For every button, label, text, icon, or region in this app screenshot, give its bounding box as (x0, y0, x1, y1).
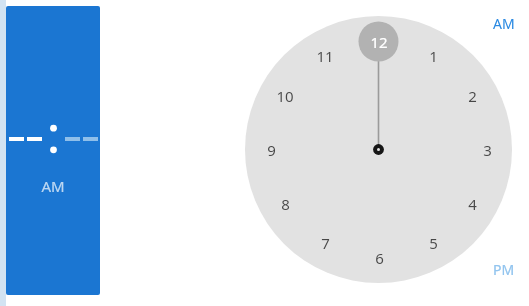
staticText: 6 (375, 248, 384, 268)
staticText: AM (493, 14, 515, 33)
button[interactable]: AM (486, 12, 522, 34)
staticText: 3 (483, 140, 492, 160)
button[interactable]: 5 (417, 231, 449, 255)
staticText: 7 (321, 233, 330, 253)
staticText: 5 (429, 233, 438, 253)
staticText: 11 (316, 46, 334, 66)
button[interactable]: 3 (471, 138, 503, 162)
staticText: 10 (276, 86, 294, 106)
staticText: 1 (429, 46, 438, 66)
button[interactable]: 12 (363, 30, 395, 54)
button[interactable]: 4 (456, 192, 488, 216)
staticText: 9 (267, 140, 276, 160)
staticText: 8 (281, 194, 290, 214)
staticText: PM (493, 260, 515, 279)
staticText: 2 (468, 86, 477, 106)
button[interactable]: 2 (456, 84, 488, 108)
button[interactable]: 8 (269, 192, 301, 216)
button[interactable]: 7 (309, 231, 341, 255)
button[interactable]: 11 (309, 44, 341, 68)
button[interactable]: Clock face, 12 o'clock selected (245, 16, 512, 283)
button[interactable]: 6 (363, 246, 395, 270)
staticText: 12 (370, 32, 388, 52)
button[interactable]: 1 (417, 44, 449, 68)
button[interactable]: PM (486, 258, 522, 280)
button[interactable]: Time input (6, 6, 100, 295)
button[interactable]: 9 (255, 138, 287, 162)
button[interactable]: 10 (269, 84, 301, 108)
staticText: 4 (468, 194, 477, 214)
staticText: AM (41, 176, 65, 196)
